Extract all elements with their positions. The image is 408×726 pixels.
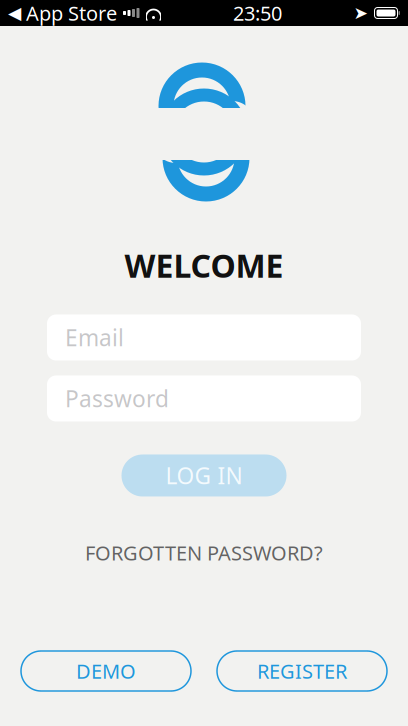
staticText: Password <box>65 383 169 413</box>
button[interactable]: LOG IN <box>121 454 286 496</box>
button[interactable]: DEMO <box>21 651 191 691</box>
staticText: FORGOTTEN PASSWORD? <box>85 539 323 566</box>
button[interactable]: Password <box>47 375 361 421</box>
button[interactable]: Email <box>47 314 361 360</box>
staticText: REGISTER <box>257 658 347 684</box>
staticText: 23:50 <box>233 0 282 26</box>
staticText: LOG IN <box>165 460 242 490</box>
button[interactable]: REGISTER <box>217 651 387 691</box>
staticText: WELCOME <box>124 244 283 286</box>
staticText: ◀ <box>8 3 21 23</box>
staticText: DEMO <box>76 658 136 684</box>
button[interactable]: FORGOTTEN PASSWORD? <box>75 533 333 572</box>
staticText: ➤ <box>353 3 368 23</box>
staticText: Email <box>65 322 124 352</box>
staticText: App Store <box>26 0 117 26</box>
